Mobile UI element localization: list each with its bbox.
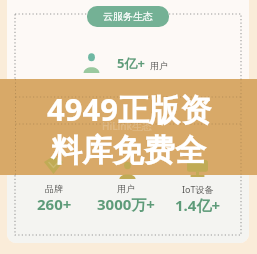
staticText: 260+ [37, 194, 72, 214]
other: Users [83, 50, 100, 73]
staticText: 云服务生态 [103, 10, 153, 23]
staticText: 4949正版资 [47, 88, 211, 130]
button[interactable]: 云服务生态 [87, 6, 169, 27]
staticText: IoT设备 [182, 183, 214, 195]
staticText: 3000万+ [97, 194, 155, 214]
staticText: HiLink生态 [102, 119, 153, 133]
button[interactable]: IoT设备 [162, 183, 233, 215]
staticText: 料库免费全 [51, 131, 206, 170]
staticText: 用户 [117, 183, 135, 194]
button[interactable]: 品牌 [18, 183, 90, 214]
button[interactable]: 用户 [90, 183, 162, 214]
staticText: 品牌 [45, 183, 63, 194]
staticText: 1.4亿+ [175, 195, 220, 215]
staticText: 用户 [150, 60, 168, 71]
staticText: 5亿+ [117, 54, 145, 72]
